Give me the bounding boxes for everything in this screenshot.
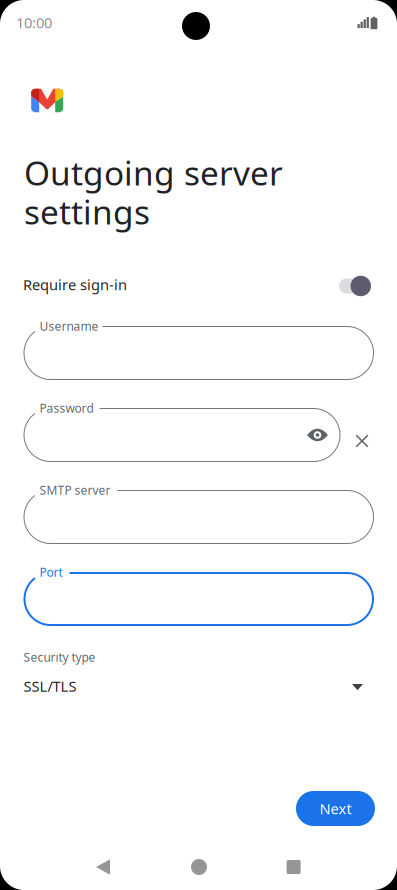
button[interactable]: Security type	[23, 651, 374, 697]
button[interactable]: Clear	[340, 419, 384, 463]
staticText: Port	[39, 564, 62, 580]
button[interactable]: Next	[296, 791, 375, 826]
button[interactable]: Back	[73, 843, 133, 890]
staticText: SSL/TLS	[23, 676, 76, 696]
staticText: Require sign-in	[23, 275, 127, 294]
staticText: Outgoing server	[24, 150, 283, 195]
button[interactable]: Require sign-in	[339, 273, 383, 299]
staticText: Password	[39, 400, 93, 416]
staticText: Next	[319, 799, 351, 818]
staticText: settings	[24, 189, 150, 234]
staticText: 10:00	[16, 13, 52, 32]
button[interactable]: Recent apps	[264, 843, 324, 890]
button[interactable]: Home	[169, 843, 229, 890]
staticText: Security type	[23, 649, 95, 665]
staticText: SMTP server	[39, 482, 110, 498]
staticText: Username	[39, 318, 98, 334]
